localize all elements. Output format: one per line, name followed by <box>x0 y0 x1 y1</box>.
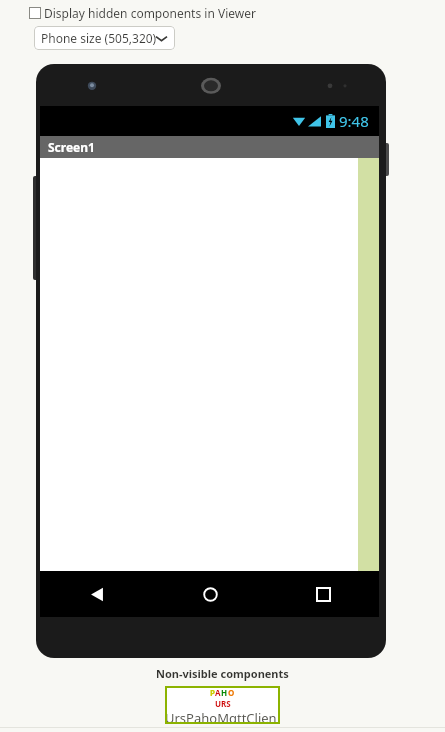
staticText: Phone size (505,320) <box>41 30 157 46</box>
button[interactable]: Phone size (505,320) <box>34 26 175 50</box>
staticText: URS <box>215 698 231 709</box>
button[interactable]: Display hidden components in Viewer <box>29 5 256 21</box>
staticText: Display hidden components in Viewer <box>44 5 256 21</box>
staticText: Screen1 <box>48 139 95 155</box>
staticText: Non-visible components <box>156 666 289 681</box>
button[interactable]: Back <box>83 580 111 608</box>
staticText: 9:48 <box>339 111 369 131</box>
staticText: P <box>210 687 215 698</box>
staticText: H <box>221 687 228 698</box>
button[interactable]: P <box>165 686 280 724</box>
staticText: O <box>228 687 235 698</box>
staticText: A <box>215 687 221 698</box>
staticText: UrsPahoMqttClient1 <box>165 709 280 724</box>
button[interactable]: Recents <box>309 580 337 608</box>
button[interactable]: Home <box>196 580 224 608</box>
